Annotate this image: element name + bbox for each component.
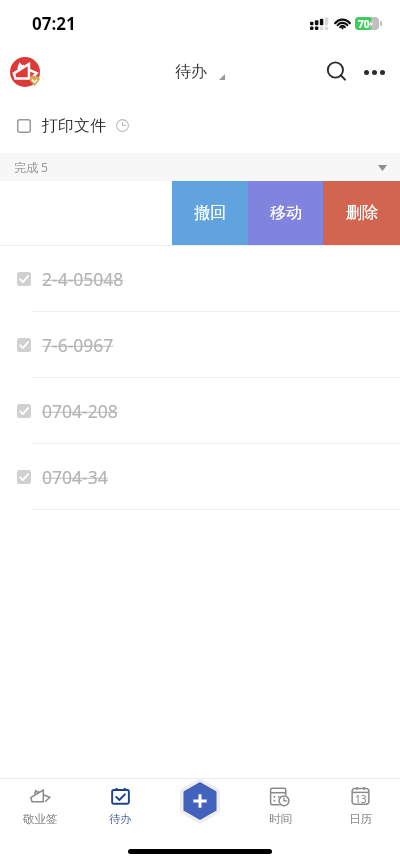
staticText: 7-6-0967 (42, 333, 114, 357)
button[interactable]: Search (320, 55, 354, 89)
staticText: 待办 (175, 62, 207, 82)
staticText: 日历 (349, 812, 372, 826)
staticText: 打印文件 (42, 116, 106, 136)
button[interactable]: Add task (177, 778, 223, 824)
button[interactable]: 2-4-05048 (0, 246, 400, 311)
staticText: 删除 (346, 203, 378, 223)
staticText: 待办 (109, 812, 132, 826)
button[interactable]: 时间 (240, 786, 320, 826)
button[interactable]: 13 (320, 786, 400, 826)
staticText: 敬业签 (23, 812, 58, 826)
staticText: 撤回 (194, 203, 226, 223)
button[interactable]: 0704-34 (0, 444, 400, 509)
button[interactable]: App logo (10, 57, 40, 87)
button[interactable]: 敬业签 (0, 786, 80, 826)
button[interactable]: 删除 (323, 181, 400, 245)
staticText: 70 (358, 17, 370, 30)
button[interactable]: 0704-208 (0, 378, 400, 443)
button[interactable]: 打印文件 (0, 98, 400, 153)
button[interactable]: 待办 (80, 786, 160, 826)
button[interactable]: 完成 5 (0, 153, 400, 181)
staticText: 0704-208 (42, 399, 118, 423)
button[interactable]: 撤回 (172, 181, 248, 245)
button[interactable]: 7-6-0967 (0, 312, 400, 377)
button[interactable]: More options (357, 55, 391, 89)
staticText: 时间 (269, 812, 292, 826)
staticText: 07:21 (32, 12, 76, 35)
button[interactable]: 移动 (248, 181, 323, 245)
staticText: 0704-34 (42, 465, 108, 489)
staticText: 完成 5 (14, 159, 48, 175)
staticText: 2-4-05048 (42, 267, 124, 291)
staticText: 移动 (270, 203, 302, 223)
staticText: 13 (355, 792, 367, 806)
